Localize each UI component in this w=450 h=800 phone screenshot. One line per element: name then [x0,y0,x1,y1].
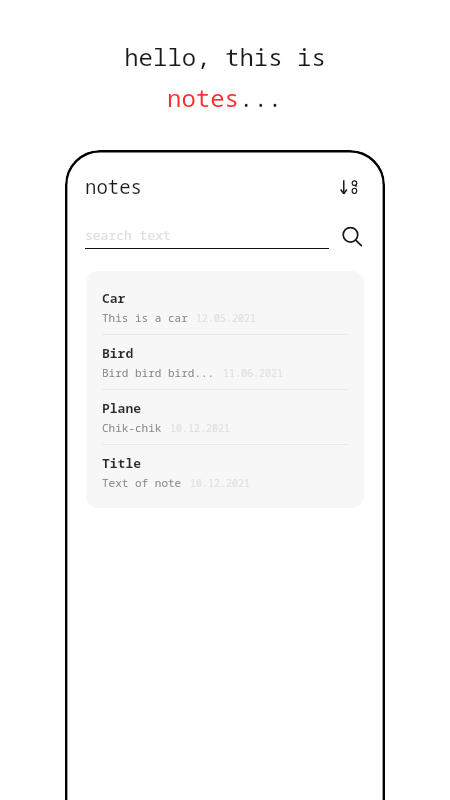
staticText: notes [167,81,239,114]
staticText: search text [85,226,171,244]
staticText: This is a car [102,310,188,325]
staticText: Plane [102,399,142,417]
staticText: 10.12.2021 [170,421,230,435]
button[interactable]: Bird [86,335,364,389]
staticText: Car [102,289,126,307]
button[interactable]: Title [86,445,364,499]
staticText: 12.05.2021 [196,311,256,325]
button[interactable]: Sort notes [335,172,365,202]
staticText: Title [102,454,142,472]
staticText: Bird bird bird... [102,365,215,380]
staticText: notes [85,174,143,200]
button[interactable]: Plane [86,390,364,444]
staticText: Chik-chik [102,420,162,435]
staticText: 10.12.2021 [190,476,250,490]
button[interactable]: Search [337,222,367,252]
staticText: hello, this is [124,40,326,73]
staticText: ... [239,81,283,114]
staticText: Bird [102,344,134,362]
staticText: Text of note [102,475,182,490]
button[interactable]: search text [85,226,329,249]
button[interactable]: Car [86,280,364,334]
staticText: 11.06.2021 [223,366,283,380]
